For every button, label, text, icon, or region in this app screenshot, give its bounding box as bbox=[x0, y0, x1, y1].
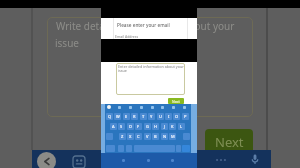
staticText: G bbox=[146, 124, 149, 129]
staticText: P bbox=[184, 114, 187, 119]
staticText: Please enter your email bbox=[117, 22, 170, 28]
staticText: I bbox=[168, 114, 170, 119]
staticText: U bbox=[159, 114, 162, 119]
staticText: Q bbox=[108, 114, 112, 119]
button[interactable]: Next bbox=[205, 129, 253, 155]
staticText: Enter detailed information about your bbox=[118, 64, 184, 69]
staticText: A bbox=[112, 124, 115, 129]
staticText: L bbox=[180, 124, 183, 129]
staticText: V bbox=[146, 134, 149, 139]
staticText: W bbox=[116, 114, 120, 119]
button[interactable]: Voice search bbox=[249, 153, 261, 166]
staticText: Y bbox=[150, 114, 153, 119]
staticText: Next bbox=[172, 99, 180, 104]
staticText: X bbox=[129, 134, 132, 139]
button[interactable]: Back bbox=[37, 152, 56, 168]
staticText: N bbox=[163, 134, 167, 139]
staticText: Write detailed information about your bbox=[56, 19, 235, 33]
staticText: E bbox=[125, 114, 128, 119]
staticText: issue bbox=[55, 36, 79, 50]
staticText: Z bbox=[121, 134, 124, 139]
staticText: Next bbox=[215, 133, 244, 151]
staticText: Email Address bbox=[115, 34, 139, 39]
staticText: M bbox=[171, 134, 175, 139]
staticText: H bbox=[154, 124, 157, 129]
button[interactable]: More options bbox=[214, 155, 228, 165]
button[interactable]: Apps bbox=[73, 156, 85, 168]
staticText: C bbox=[137, 134, 140, 139]
staticText: T bbox=[142, 114, 145, 119]
staticText: R bbox=[133, 114, 136, 119]
staticText: D bbox=[129, 124, 132, 129]
staticText: issue bbox=[118, 68, 127, 73]
staticText: O bbox=[175, 114, 179, 119]
staticText: J bbox=[164, 124, 166, 129]
staticText: K bbox=[171, 124, 174, 129]
staticText: B bbox=[154, 134, 157, 139]
staticText: F bbox=[137, 124, 140, 129]
staticText: S bbox=[120, 124, 123, 129]
